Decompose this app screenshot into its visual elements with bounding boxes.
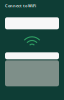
staticText: Connect to WiFi (5, 3, 36, 8)
